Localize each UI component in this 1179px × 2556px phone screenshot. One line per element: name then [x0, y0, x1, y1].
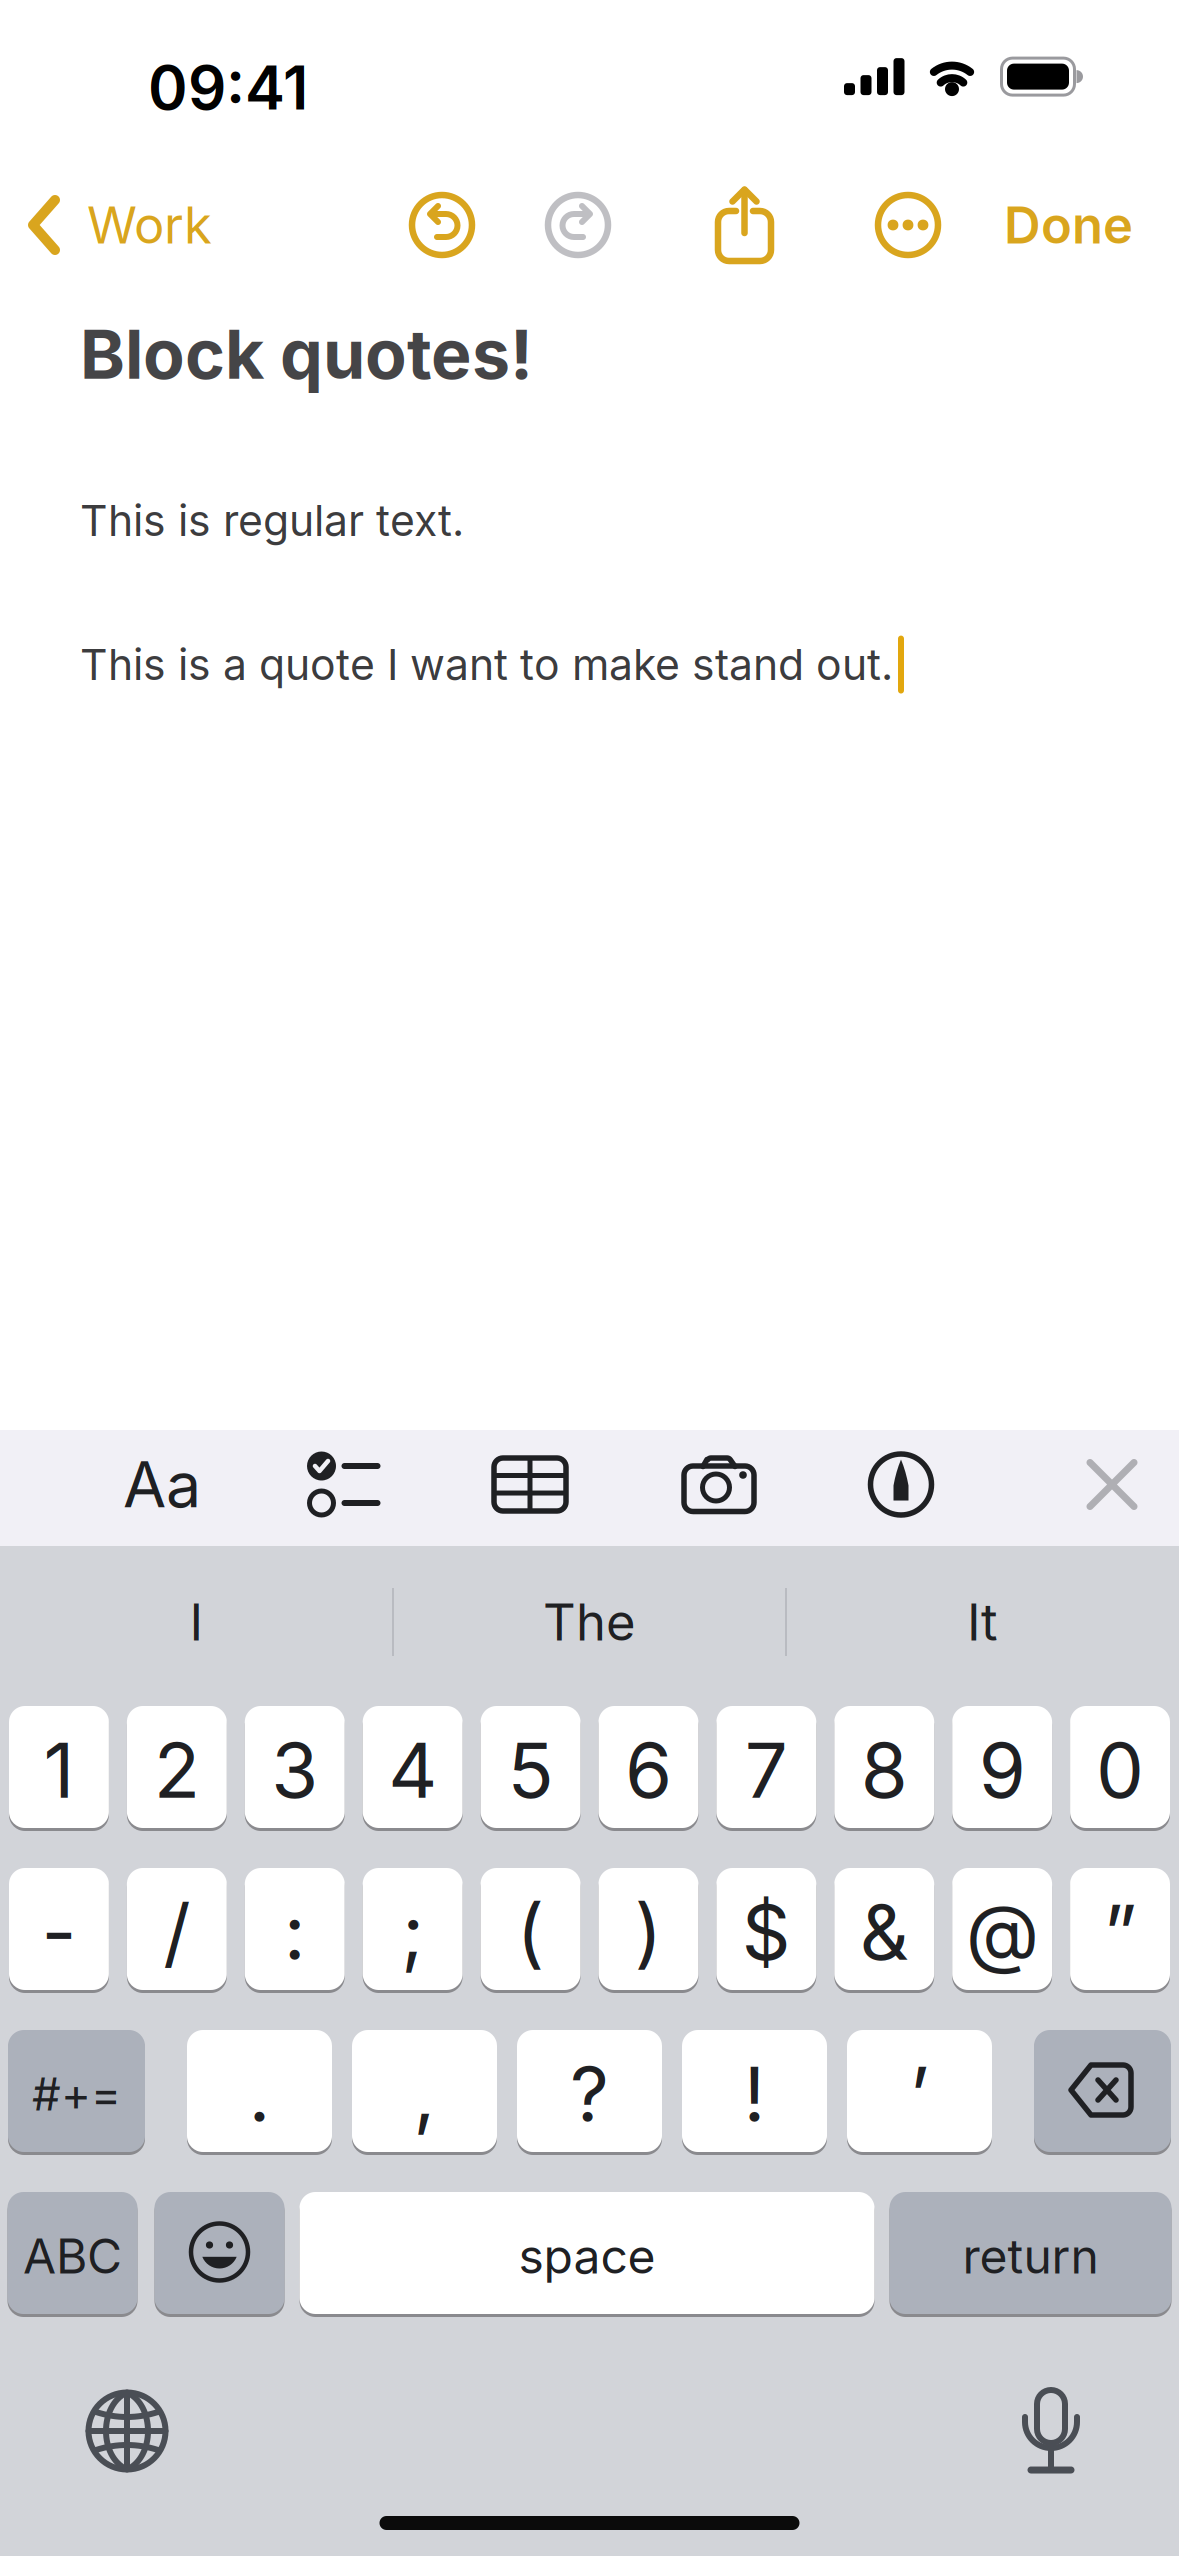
staticText: ? [570, 2049, 609, 2139]
button[interactable]: 2 [127, 1705, 227, 1831]
staticText: The [543, 1592, 636, 1652]
button[interactable]: Delete [1034, 2029, 1171, 2155]
staticText: ” [1103, 1887, 1136, 1977]
button[interactable]: Back to Work folder [27, 195, 212, 255]
button[interactable]: ! [682, 2029, 827, 2155]
staticText: This is a quote I want to make stand out… [80, 639, 893, 690]
staticText: ABC [23, 2228, 122, 2284]
button[interactable]: - [9, 1867, 109, 1993]
staticText: #+= [32, 2067, 121, 2121]
button[interactable]: ) [598, 1867, 698, 1993]
staticText: 7 [745, 1725, 788, 1815]
staticText: : [284, 1887, 306, 1977]
staticText: 09:41 [148, 52, 308, 123]
button[interactable]: 8 [834, 1705, 934, 1831]
button[interactable]: Table [491, 1455, 569, 1514]
staticText: ) [634, 1887, 662, 1977]
button[interactable]: $ [716, 1867, 816, 1993]
button[interactable]: Emoji [154, 2191, 284, 2317]
staticText: ; [401, 1887, 424, 1977]
button[interactable]: 9 [952, 1705, 1052, 1831]
button[interactable]: The [394, 1546, 785, 1698]
button[interactable]: 5 [481, 1705, 580, 1831]
button[interactable]: More [875, 192, 941, 258]
staticText: Done [1004, 195, 1133, 255]
button[interactable]: Checklist [305, 1454, 380, 1515]
staticText: Block quotes! [80, 314, 533, 394]
staticText: . [248, 2049, 270, 2139]
button[interactable]: Dictation [1022, 2385, 1080, 2477]
button[interactable]: & [834, 1867, 934, 1993]
button[interactable]: Camera [681, 1454, 757, 1514]
button[interactable]: Markup [868, 1451, 934, 1517]
staticText: 6 [625, 1725, 672, 1815]
button[interactable]: ” [1070, 1867, 1170, 1993]
button[interactable]: 6 [598, 1705, 698, 1831]
staticText: 9 [979, 1725, 1026, 1815]
staticText: - [41, 1887, 76, 1977]
button[interactable]: ; [363, 1867, 463, 1993]
button[interactable]: ’ [847, 2029, 992, 2155]
button[interactable]: 0 [1070, 1705, 1170, 1831]
button[interactable]: Dismiss keyboard [1088, 1460, 1136, 1508]
staticText: & [860, 1887, 909, 1977]
staticText: I [189, 1592, 203, 1652]
staticText: , [413, 2049, 435, 2139]
button[interactable]: return [889, 2191, 1171, 2317]
staticText: $ [742, 1887, 791, 1977]
staticText: return [962, 2228, 1098, 2284]
staticText: 0 [1096, 1725, 1144, 1815]
staticText: 4 [388, 1725, 437, 1815]
staticText: 8 [861, 1725, 908, 1815]
staticText: 3 [271, 1725, 318, 1815]
staticText: Work [87, 195, 212, 255]
staticText: space [518, 2228, 655, 2284]
button[interactable]: 7 [716, 1705, 816, 1831]
button[interactable]: : [245, 1867, 345, 1993]
staticText: ! [743, 2049, 765, 2139]
button[interactable]: Format [107, 1444, 217, 1524]
staticText: It [967, 1592, 998, 1652]
staticText: / [163, 1887, 190, 1977]
button[interactable]: Share [715, 186, 775, 264]
button[interactable]: @ [952, 1867, 1052, 1993]
button[interactable]: I [1, 1546, 392, 1698]
button[interactable]: 4 [363, 1705, 463, 1831]
button[interactable]: Redo [545, 192, 611, 258]
button[interactable]: Undo [409, 192, 475, 258]
staticText: 5 [508, 1725, 554, 1815]
staticText: 1 [43, 1725, 74, 1815]
button[interactable]: ? [517, 2029, 662, 2155]
button[interactable]: space [299, 2191, 874, 2317]
button[interactable]: It [787, 1546, 1178, 1698]
staticText: 2 [154, 1725, 200, 1815]
staticText: @ [966, 1887, 1039, 1977]
button[interactable]: 1 [9, 1705, 109, 1831]
staticText: ’ [909, 2049, 929, 2139]
button[interactable]: ( [481, 1867, 580, 1993]
button[interactable]: Next keyboard [85, 2389, 169, 2473]
button[interactable]: 3 [245, 1705, 345, 1831]
staticText: ( [517, 1887, 545, 1977]
staticText: This is regular text. [80, 495, 464, 545]
button[interactable]: , [352, 2029, 497, 2155]
button[interactable]: Done [1004, 195, 1133, 255]
button[interactable]: / [127, 1867, 227, 1993]
staticText: Aa [123, 1447, 201, 1521]
button[interactable]: #+= [8, 2029, 145, 2155]
button[interactable]: . [187, 2029, 332, 2155]
button[interactable]: ABC [7, 2191, 137, 2317]
